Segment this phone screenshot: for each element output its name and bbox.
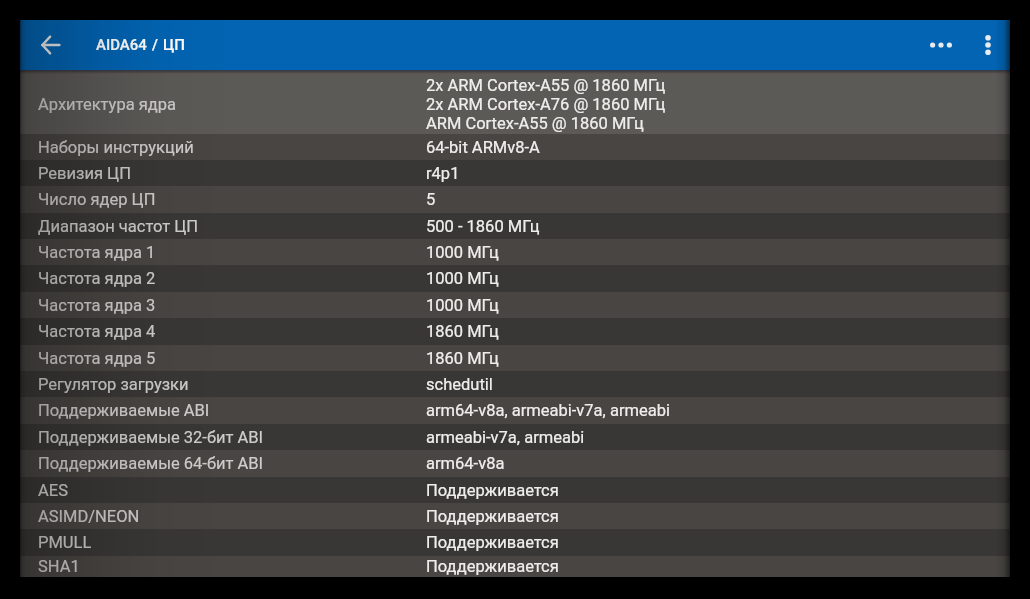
staticText: Частота ядра 1 xyxy=(38,243,156,262)
button[interactable]: Наборы инструкций xyxy=(20,134,1010,160)
staticText: Частота ядра 2 xyxy=(38,269,156,288)
button[interactable]: Поддерживаемые 32-бит ABI xyxy=(20,424,1010,450)
button[interactable]: Ещё xyxy=(915,20,966,70)
staticText: Поддерживается xyxy=(426,507,559,526)
button[interactable]: Частота ядра 5 xyxy=(20,345,1010,371)
staticText: ARM Cortex-A55 @ 1860 МГц xyxy=(426,114,644,133)
button[interactable]: SHA1 xyxy=(20,556,1010,577)
button[interactable]: Меню xyxy=(966,20,1010,70)
staticText: Частота ядра 4 xyxy=(38,322,156,341)
button[interactable]: Архитектура ядра xyxy=(20,74,1010,134)
staticText: Регулятор загрузки xyxy=(38,375,189,394)
staticText: AES xyxy=(38,481,68,500)
button[interactable]: ASIMD/NEON xyxy=(20,503,1010,529)
button[interactable]: Регулятор загрузки xyxy=(20,371,1010,397)
staticText: Поддерживаемые ABI xyxy=(38,401,210,420)
staticText: Наборы инструкций xyxy=(38,138,194,157)
button[interactable]: Частота ядра 3 xyxy=(20,292,1010,318)
button[interactable]: Поддерживаемые ABI xyxy=(20,397,1010,424)
staticText: 500 - 1860 МГц xyxy=(426,217,540,236)
button[interactable]: Поддерживаемые 64-бит ABI xyxy=(20,450,1010,477)
button[interactable]: PMULL xyxy=(20,529,1010,556)
staticText: arm64-v8a xyxy=(426,454,505,473)
staticText: arm64-v8a, armeabi-v7a, armeabi xyxy=(426,401,670,420)
staticText: r4p1 xyxy=(426,164,460,183)
staticText: 2x ARM Cortex-A76 @ 1860 МГц xyxy=(426,95,666,114)
staticText: 64-bit ARMv8-A xyxy=(426,138,540,157)
staticText: Поддерживается xyxy=(426,533,559,552)
button[interactable]: Диапазон частот ЦП xyxy=(20,213,1010,239)
staticText: Поддерживается xyxy=(426,557,559,576)
staticText: schedutil xyxy=(426,375,493,394)
button[interactable]: Ревизия ЦП xyxy=(20,160,1010,186)
staticText: Архитектура ядра xyxy=(38,95,176,114)
staticText: ASIMD/NEON xyxy=(38,507,140,526)
staticText: SHA1 xyxy=(38,557,80,576)
button[interactable]: AES xyxy=(20,477,1010,503)
button[interactable]: Частота ядра 1 xyxy=(20,239,1010,265)
staticText: / xyxy=(152,36,158,54)
button[interactable]: Частота ядра 4 xyxy=(20,318,1010,345)
staticText: armeabi-v7a, armeabi xyxy=(426,428,585,447)
staticText: PMULL xyxy=(38,533,92,552)
staticText: 1000 МГц xyxy=(426,296,499,315)
staticText: AIDA64 xyxy=(96,36,147,54)
staticText: Поддерживаемые 32-бит ABI xyxy=(38,428,263,447)
staticText: Поддерживается xyxy=(426,481,559,500)
staticText: Число ядер ЦП xyxy=(38,190,156,209)
button[interactable]: Частота ядра 2 xyxy=(20,265,1010,292)
staticText: Частота ядра 5 xyxy=(38,349,156,368)
staticText: 1000 МГц xyxy=(426,243,499,262)
staticText: Частота ядра 3 xyxy=(38,296,156,315)
staticText: Ревизия ЦП xyxy=(38,164,131,183)
button[interactable]: Число ядер ЦП xyxy=(20,186,1010,213)
staticText: 2x ARM Cortex-A55 @ 1860 МГц xyxy=(426,76,666,95)
staticText: 1860 МГц xyxy=(426,349,499,368)
staticText: Поддерживаемые 64-бит ABI xyxy=(38,454,263,473)
staticText: 1860 МГц xyxy=(426,322,499,341)
staticText: 1000 МГц xyxy=(426,269,499,288)
staticText: Диапазон частот ЦП xyxy=(38,217,199,236)
staticText: 5 xyxy=(426,190,436,209)
button[interactable]: Назад xyxy=(20,20,80,70)
staticText: ЦП xyxy=(163,36,185,54)
